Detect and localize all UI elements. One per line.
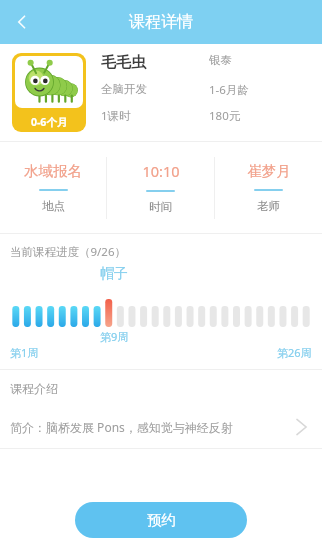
staticText: 水域报名: [24, 162, 82, 180]
button[interactable]: Back: [0, 0, 44, 44]
button[interactable]: 水域报名: [0, 142, 106, 233]
staticText: 1课时: [101, 108, 131, 124]
button[interactable]: 0-6个月: [0, 44, 322, 141]
staticText: 时间: [149, 200, 172, 214]
staticText: 0-6个月: [31, 115, 68, 129]
button[interactable]: 10:10: [107, 142, 214, 233]
staticText: 银泰: [209, 53, 232, 67]
staticText: 崔梦月: [247, 162, 291, 180]
staticText: 第9周: [100, 329, 129, 344]
staticText: 当前课程进度（9/26）: [10, 244, 127, 260]
staticText: 帽子: [100, 265, 128, 283]
staticText: 第1周: [10, 345, 39, 360]
staticText: 简介：脑桥发展 Pons，感知觉与神经反射: [10, 419, 295, 435]
button[interactable]: 简介：脑桥发展 Pons，感知觉与神经反射: [0, 406, 322, 448]
staticText: 老师: [257, 199, 280, 213]
staticText: 全脑开发: [101, 82, 147, 96]
staticText: 地点: [42, 199, 65, 213]
staticText: 毛毛虫: [101, 53, 146, 72]
staticText: 课程介绍: [10, 381, 58, 396]
staticText: 10:10: [142, 161, 180, 181]
staticText: 1-6月龄: [209, 82, 249, 98]
staticText: 预约: [147, 511, 176, 529]
staticText: 第26周: [277, 345, 312, 360]
staticText: 课程详情: [129, 12, 193, 32]
button[interactable]: 崔梦月: [215, 142, 322, 233]
button[interactable]: 预约: [75, 502, 247, 538]
staticText: 180元: [209, 108, 241, 124]
